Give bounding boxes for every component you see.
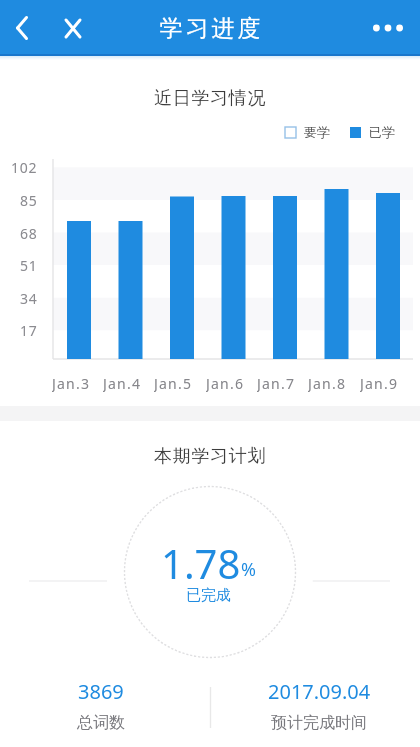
staticText: 85 bbox=[20, 191, 38, 209]
staticText: Jan.4 bbox=[103, 374, 142, 392]
staticText: Jan.5 bbox=[154, 374, 193, 392]
staticText: 102 bbox=[11, 158, 38, 176]
staticText: Jan.9 bbox=[360, 374, 399, 392]
button[interactable]: 已学 bbox=[350, 124, 395, 140]
staticText: 要学 bbox=[304, 124, 330, 140]
staticText: 学习进度 bbox=[158, 14, 262, 43]
staticText: 17 bbox=[20, 321, 38, 339]
staticText: 预计完成时间 bbox=[271, 713, 367, 733]
staticText: 2017.09.04 bbox=[268, 678, 371, 705]
staticText: 51 bbox=[20, 256, 38, 274]
button[interactable] bbox=[364, 8, 411, 48]
staticText: 本期学习计划 bbox=[154, 445, 267, 468]
staticText: 1.78 bbox=[161, 536, 241, 586]
staticText: Jan.6 bbox=[206, 374, 245, 392]
staticText: Jan.7 bbox=[257, 374, 296, 392]
staticText: Jan.3 bbox=[52, 374, 91, 392]
staticText: 近日学习情况 bbox=[154, 87, 267, 110]
button[interactable]: 3869 bbox=[31, 678, 171, 733]
staticText: Jan.8 bbox=[308, 374, 347, 392]
staticText: 34 bbox=[20, 289, 38, 307]
staticText: 已完成 bbox=[186, 586, 231, 605]
staticText: 总词数 bbox=[77, 713, 125, 733]
staticText: % bbox=[241, 557, 256, 582]
button[interactable]: 要学 bbox=[285, 124, 330, 140]
button[interactable] bbox=[56, 8, 90, 48]
staticText: 68 bbox=[20, 224, 38, 242]
staticText: 已学 bbox=[369, 124, 395, 140]
button[interactable] bbox=[7, 8, 37, 48]
staticText: 3869 bbox=[78, 678, 124, 705]
button[interactable]: 2017.09.04 bbox=[249, 678, 389, 733]
